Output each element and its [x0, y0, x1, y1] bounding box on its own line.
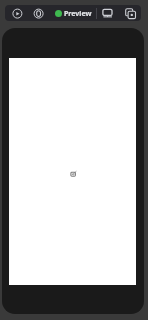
button[interactable]: Duplicate preview [124, 6, 138, 20]
button[interactable]: Run preview [12, 8, 24, 20]
button[interactable]: Preview on device [101, 7, 113, 19]
staticText: Preview [64, 9, 92, 19]
button[interactable]: Interactive preview [34, 8, 46, 20]
